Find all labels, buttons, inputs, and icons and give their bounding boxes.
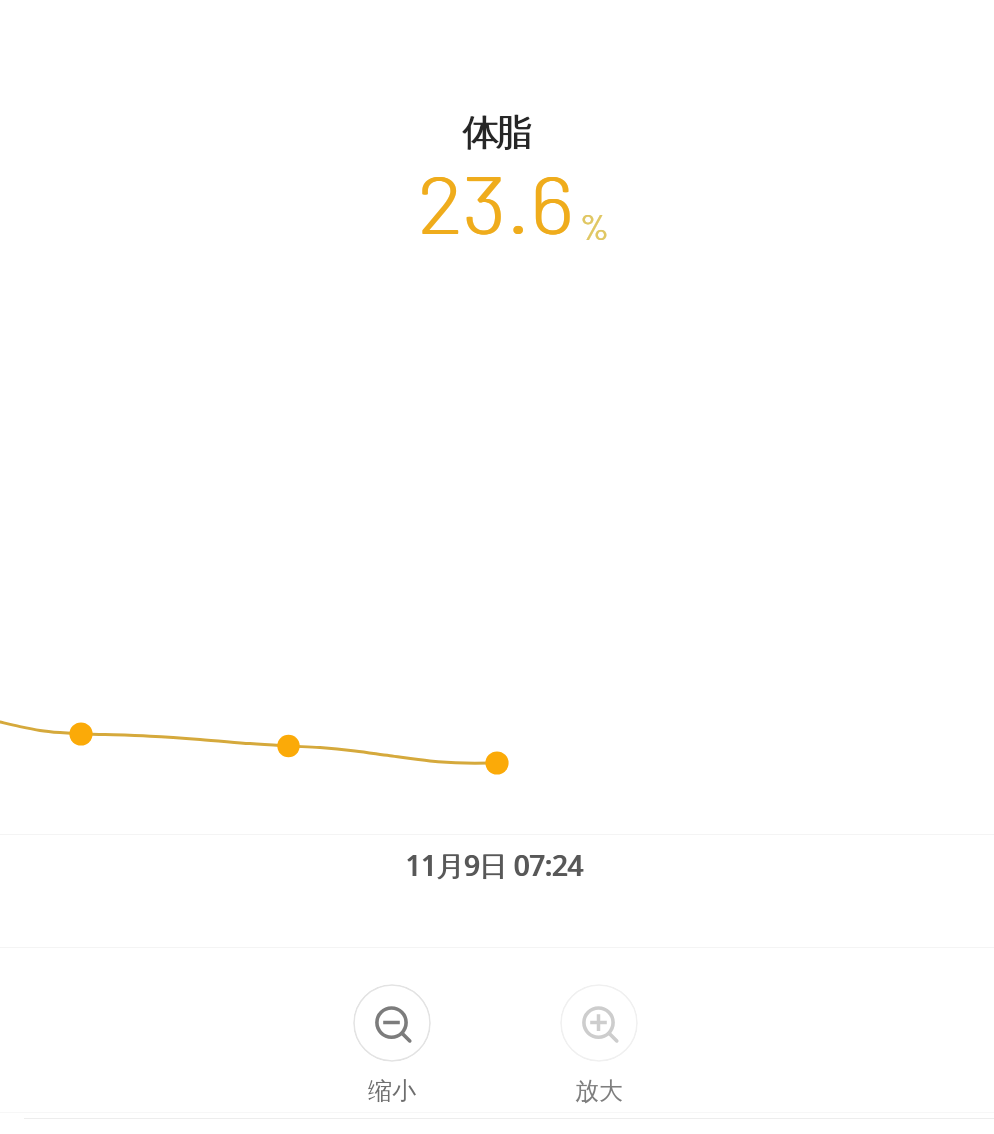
button[interactable]: Zoom in [560,984,638,1106]
staticText: % [579,205,609,247]
button[interactable]: Zoom out [353,984,431,1106]
staticText: 体脂 [0,109,993,156]
staticText: 23.6 [418,154,575,250]
staticText: % [580,205,610,247]
staticText: 缩小 [368,1076,416,1106]
staticText: 11月9日 07:24 [406,846,584,884]
staticText: 放大 [575,1076,623,1106]
staticText: 体脂 [0,109,992,156]
staticText: 11月9日 07:24 [405,846,583,884]
staticText: 23.6 [417,154,573,250]
